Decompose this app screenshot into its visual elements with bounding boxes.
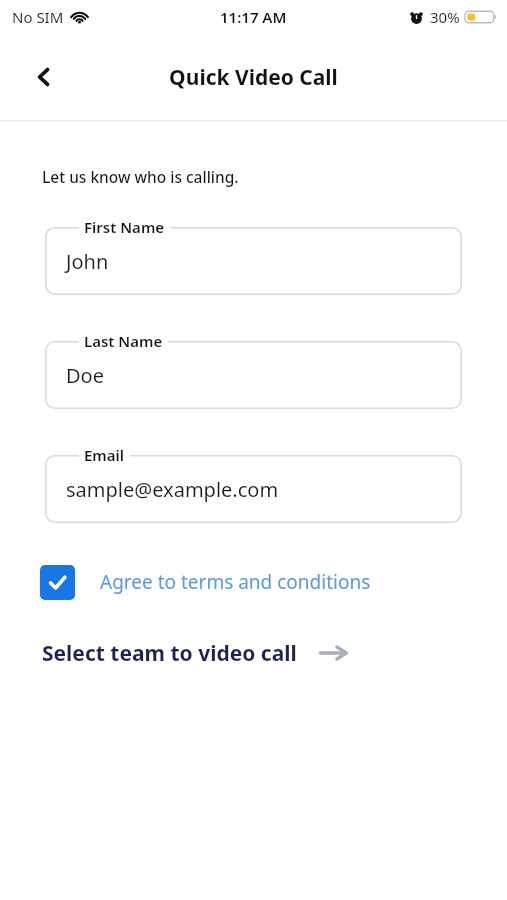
button[interactable]: sample@example.com <box>45 455 462 523</box>
staticText: Select team to video call <box>42 639 297 668</box>
staticText: Email <box>84 445 125 465</box>
staticText: Doe <box>66 362 104 389</box>
button[interactable]: John <box>45 227 462 295</box>
staticText: 11:17 AM <box>220 7 287 27</box>
staticText: Let us know who is calling. <box>42 166 239 187</box>
button[interactable]: Doe <box>45 341 462 409</box>
button[interactable]: Agree to terms and conditions <box>40 560 467 604</box>
staticText: sample@example.com <box>66 476 279 503</box>
staticText: Last Name <box>84 331 163 351</box>
staticText: Quick Video Call <box>169 63 338 92</box>
button[interactable]: Select team to video call <box>42 630 348 676</box>
staticText: John <box>66 248 109 275</box>
staticText: No SIM <box>12 7 64 27</box>
staticText: Agree to terms and conditions <box>100 569 371 595</box>
staticText: 30% <box>430 7 460 27</box>
button[interactable]: Back <box>22 55 66 99</box>
staticText: First Name <box>84 217 165 237</box>
